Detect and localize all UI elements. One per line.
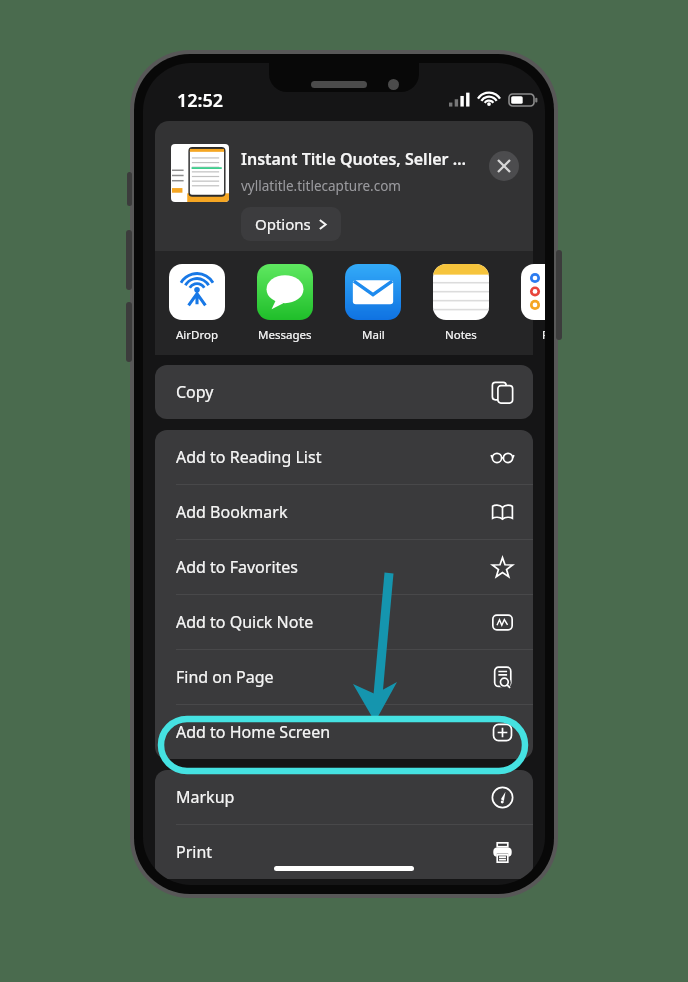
button[interactable]: Find on Page bbox=[155, 650, 533, 705]
staticText: Options bbox=[255, 214, 311, 234]
button[interactable]: Print bbox=[155, 825, 533, 879]
staticText: Add to Favorites bbox=[176, 556, 298, 578]
staticText: Add to Quick Note bbox=[176, 611, 314, 633]
staticText: Notes bbox=[445, 327, 477, 343]
staticText: Add to Reading List bbox=[176, 446, 322, 468]
staticText: Find on Page bbox=[176, 666, 274, 688]
button[interactable]: Messages bbox=[256, 264, 314, 343]
button[interactable]: Add to Quick Note bbox=[155, 595, 533, 650]
button[interactable]: Notes bbox=[432, 264, 490, 343]
button[interactable]: Re bbox=[520, 264, 545, 343]
staticText: Add to Home Screen bbox=[176, 721, 331, 743]
staticText: Re bbox=[542, 327, 545, 343]
staticText: 12:52 bbox=[177, 88, 224, 113]
staticText: Markup bbox=[176, 786, 235, 808]
button[interactable]: Options bbox=[241, 207, 341, 241]
button[interactable]: Add to Reading List bbox=[155, 430, 533, 485]
button[interactable]: Add to Favorites bbox=[155, 540, 533, 595]
staticText: Instant Title Quotes, Seller N… bbox=[241, 148, 477, 170]
button[interactable]: Close bbox=[489, 151, 519, 181]
button[interactable]: Copy bbox=[155, 365, 533, 419]
button[interactable]: Markup bbox=[155, 770, 533, 825]
staticText: Mail bbox=[362, 327, 385, 343]
staticText: Add Bookmark bbox=[176, 501, 288, 523]
staticText: Messages bbox=[258, 327, 312, 343]
staticText: AirDrop bbox=[176, 327, 219, 343]
staticText: Copy bbox=[176, 381, 214, 403]
staticText: vyllatitle.titlecapture.com bbox=[241, 177, 401, 195]
button[interactable]: Mail bbox=[344, 264, 402, 343]
button[interactable]: Add to Home Screen bbox=[155, 705, 533, 759]
button[interactable]: Add Bookmark bbox=[155, 485, 533, 540]
button[interactable]: AirDrop bbox=[168, 264, 226, 343]
staticText: Print bbox=[176, 841, 213, 863]
